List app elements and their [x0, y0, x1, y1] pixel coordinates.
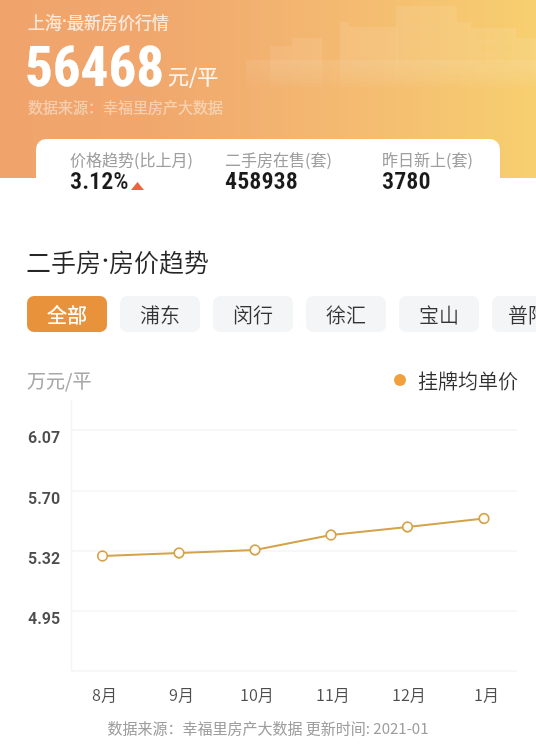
button[interactable]: 闵行	[213, 296, 293, 332]
staticText: 8月	[92, 682, 117, 704]
staticText: 全部	[47, 300, 87, 329]
staticText: 56468	[25, 35, 164, 99]
staticText: 宝山	[419, 300, 459, 329]
staticText: 徐汇	[326, 300, 366, 329]
staticText: 11月	[316, 682, 350, 704]
staticText: 二手房在售(套)	[225, 147, 332, 170]
button[interactable]: 昨日新上(套)	[348, 139, 500, 207]
button[interactable]: 宝山	[399, 296, 479, 332]
staticText: 最新房价行情	[67, 9, 169, 34]
staticText: 普陀	[508, 300, 536, 329]
staticText: 房价趋势	[109, 243, 210, 279]
staticText: 挂牌均单价	[418, 366, 518, 395]
staticText: 二手房	[26, 243, 102, 279]
staticText: 上海	[28, 9, 62, 34]
button[interactable]: 普陀	[492, 296, 536, 332]
staticText: 5.32	[28, 549, 61, 568]
staticText: 万元/平	[27, 366, 92, 394]
staticText: 9月	[169, 682, 194, 704]
staticText: 6.07	[28, 428, 61, 447]
staticText: 浦东	[140, 300, 180, 329]
button[interactable]: 浦东	[120, 296, 200, 332]
staticText: 数据来源：幸福里房产大数据	[28, 96, 224, 118]
staticText: ·	[62, 11, 67, 30]
staticText: 元/平	[168, 60, 219, 90]
staticText: 10月	[240, 682, 274, 704]
staticText: 4.95	[28, 609, 61, 628]
staticText: 1月	[474, 682, 499, 704]
staticText: 昨日新上(套)	[382, 147, 473, 170]
staticText: 3780	[382, 167, 431, 195]
staticText: 数据来源：幸福里房产大数据 更新时间: 2021-01	[0, 717, 536, 739]
staticText: ·	[102, 247, 109, 274]
staticText: 5.70	[28, 489, 61, 508]
staticText: 12月	[392, 682, 426, 704]
staticText: 闵行	[233, 300, 273, 329]
button[interactable]: 徐汇	[306, 296, 386, 332]
button[interactable]: 二手房在售(套)	[191, 139, 346, 207]
button[interactable]: 价格趋势(比上月)	[36, 139, 191, 207]
staticText: 3.12%	[70, 167, 129, 195]
button[interactable]: 全部	[27, 296, 107, 332]
staticText: 458938	[225, 167, 298, 195]
staticText: 价格趋势(比上月)	[70, 147, 193, 170]
